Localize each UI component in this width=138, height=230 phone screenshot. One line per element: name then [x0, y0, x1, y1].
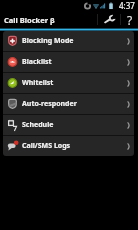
button[interactable]: Blocking Mode [3, 31, 134, 51]
staticText: Blacklist [22, 57, 52, 67]
button[interactable]: Settings [98, 11, 120, 28]
staticText: Whitelist [22, 78, 54, 88]
button[interactable]: Schedule [3, 115, 134, 135]
button[interactable]: Blacklist [3, 52, 134, 72]
button[interactable]: Whitelist [3, 73, 134, 93]
staticText: Blocking Mode [22, 36, 74, 46]
staticText: Call/SMS Logs [22, 141, 71, 151]
staticText: Call Blocker β [4, 15, 55, 25]
staticText: 4:37 [119, 0, 135, 11]
staticText: ? [127, 12, 133, 28]
button[interactable]: Call/SMS Logs [3, 136, 134, 156]
staticText: Schedule [22, 120, 54, 130]
button[interactable]: Auto-responder [3, 94, 134, 114]
button[interactable]: Help [121, 11, 138, 28]
staticText: Auto-responder [22, 99, 77, 109]
